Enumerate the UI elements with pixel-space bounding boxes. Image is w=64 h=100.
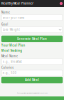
button[interactable]: Add Meal [1,77,63,83]
button[interactable]: Lose Weight [1,27,63,33]
staticText: Name [1,11,10,14]
staticText: Meal Tracking [1,49,22,52]
staticText: Add Meal [25,78,39,82]
staticText: Generate Meal Plan [17,37,47,41]
staticText: Enter your name [3,16,25,19]
staticText: Calories [1,66,13,69]
button[interactable]: Enter your name [1,15,63,21]
staticText: © 2024 Healthy Meal Planner. All rights … [16,92,47,94]
staticText: e.g., 500 [3,71,17,75]
button[interactable]: e.g., Breakfast [1,59,63,65]
staticText: Your Meal Plan [1,44,25,47]
staticText: Lose Weight [3,28,20,31]
button[interactable]: e.g., 500 [1,70,63,76]
staticText: e.g., Breakfast [3,60,22,63]
button[interactable]: Generate Meal Plan [1,36,63,42]
staticText: Healthy Meal Planner [1,2,33,5]
staticText: Goal [1,23,8,26]
button[interactable]: Favorites [60,2,63,5]
staticText: Meal Name [1,55,18,58]
